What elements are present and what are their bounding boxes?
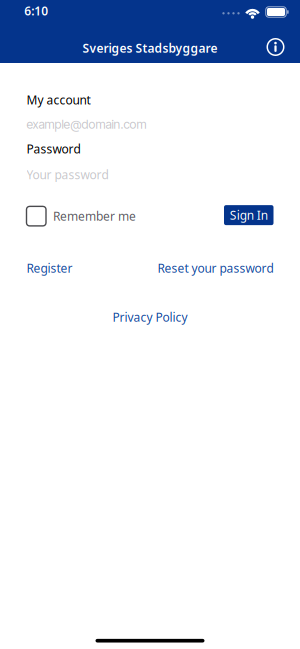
staticText: Reset your password <box>157 260 273 276</box>
staticText: Register <box>26 260 72 276</box>
staticText: Password <box>26 141 80 157</box>
button[interactable]: Sign In <box>224 205 273 225</box>
staticText: Your password <box>26 167 108 183</box>
staticText: My account <box>26 92 90 108</box>
staticText: example@domain.com <box>26 117 146 132</box>
button[interactable]: Remember me <box>26 206 136 226</box>
staticText: Sveriges Stadsbyggare <box>82 40 217 56</box>
staticText: 6:10 <box>24 3 48 19</box>
staticText: Privacy Policy <box>112 309 187 325</box>
staticText: Sign In <box>230 207 268 223</box>
button[interactable]: Reset your password <box>157 260 273 276</box>
button[interactable]: Info <box>266 38 284 56</box>
staticText: Remember me <box>53 208 136 224</box>
button[interactable]: Register <box>26 260 72 276</box>
button[interactable]: Privacy Policy <box>112 309 187 325</box>
